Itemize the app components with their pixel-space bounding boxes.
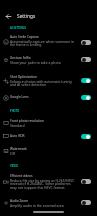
button[interactable]: Back (2, 10, 14, 22)
button[interactable]: Toggle on (81, 78, 91, 83)
button[interactable] (0, 144, 97, 158)
staticText: Gesture Selfie (10, 56, 31, 60)
staticText: Efficient videos (10, 174, 33, 178)
staticText: Audio Zoom (10, 199, 29, 203)
button[interactable]: Toggle on (81, 95, 91, 100)
staticText: PHOTO (10, 109, 20, 113)
staticText: Shot Optimization (10, 75, 38, 79)
staticText: Google Lens (10, 95, 29, 99)
staticText: Auto Smile Capture (10, 35, 39, 39)
button[interactable] (0, 196, 97, 212)
button[interactable] (0, 71, 97, 90)
staticText: Standard (10, 123, 25, 128)
staticText: Enhance photos with automatic tuning and… (10, 79, 72, 87)
button[interactable]: Toggle off (81, 57, 91, 62)
button[interactable] (0, 170, 97, 194)
staticText: Off (10, 151, 15, 156)
staticText: AI SETTINGS (10, 26, 26, 30)
button[interactable]: Toggle off (81, 179, 91, 184)
staticText: VIDEO (10, 164, 19, 168)
button[interactable] (0, 31, 97, 50)
button[interactable] (0, 115, 97, 130)
staticText: Amplify audio in the zoomed area (10, 203, 64, 208)
button[interactable]: Toggle off (81, 200, 91, 205)
button[interactable] (0, 52, 97, 68)
staticText: Automatically capture when someone in th… (10, 39, 74, 47)
staticText: Watermark (10, 147, 27, 151)
button[interactable] (0, 92, 97, 104)
staticText: Settings (17, 13, 36, 20)
staticText: Show your palm to take a photo (10, 60, 61, 65)
staticText: Auto HDR (10, 134, 25, 138)
button[interactable]: Toggle on (81, 134, 91, 139)
button[interactable] (0, 131, 97, 143)
staticText: Reduce file size by saving as H.265/HEVC… (10, 178, 75, 190)
button[interactable]: Toggle off (81, 40, 91, 45)
staticText: Front photo resolution (10, 119, 44, 123)
